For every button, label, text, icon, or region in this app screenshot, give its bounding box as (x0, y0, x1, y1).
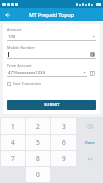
staticText: From Account (7, 63, 32, 68)
staticText: Mobile Number (7, 45, 35, 50)
button[interactable]: 1 (1, 118, 25, 134)
button[interactable]: 3 (51, 118, 76, 134)
staticText: 4716xxxxxxxx1234 (8, 70, 83, 76)
button[interactable]: 5 (26, 135, 50, 150)
button[interactable]: 7 (1, 151, 25, 166)
staticText: 2 (36, 122, 40, 131)
staticText: 100 (8, 34, 92, 40)
staticText: 5 (36, 138, 40, 147)
staticText: 8 (36, 154, 40, 163)
button[interactable]: Back (0, 8, 13, 21)
staticText: 6 (62, 138, 66, 147)
button[interactable]: Enter (77, 151, 102, 166)
staticText: 9 (62, 154, 66, 163)
button[interactable]: 9 (51, 151, 76, 166)
button[interactable]: Pick contact (90, 52, 95, 57)
button[interactable]: Save Transaction (7, 80, 42, 87)
button[interactable]: 0 (26, 167, 50, 182)
button[interactable]: Done (77, 135, 102, 150)
button[interactable]: 8 (26, 151, 50, 166)
button[interactable]: 2 (26, 118, 50, 134)
staticText: MT Prepaid Topup (29, 11, 74, 18)
staticText: 1 (11, 122, 15, 131)
staticText: Done (85, 140, 95, 145)
staticText: 7 (11, 154, 15, 163)
staticText: 3 (62, 122, 66, 131)
button[interactable]: Pick contact (7, 51, 96, 59)
staticText: 0 (36, 170, 40, 179)
button[interactable]: Backspace (77, 118, 102, 134)
staticText: Save Transaction (13, 81, 42, 86)
button[interactable]: 4716xxxxxxxx1234 (7, 69, 87, 77)
staticText: 4 (11, 138, 15, 147)
staticText: SUBMIT (44, 102, 60, 108)
button[interactable]: Account info (89, 70, 96, 77)
staticText: Amount (7, 27, 22, 32)
button[interactable]: SUBMIT (7, 100, 96, 110)
button[interactable]: 4 (1, 135, 25, 150)
button[interactable]: 6 (51, 135, 76, 150)
button[interactable]: 100 (7, 33, 96, 41)
